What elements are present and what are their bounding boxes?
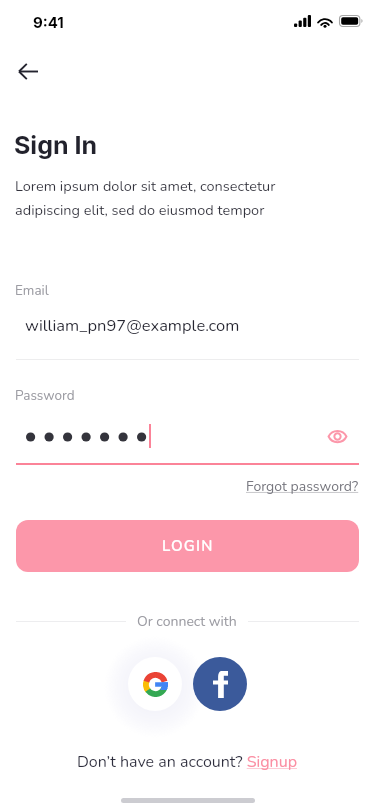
staticText: Or connect with: [137, 612, 237, 631]
staticText: Forgot password?: [246, 477, 359, 496]
button[interactable]: Sign in with Google: [128, 657, 182, 711]
button[interactable]: LOGIN: [16, 520, 359, 572]
button[interactable]: Don’t have an account? Signup: [77, 751, 298, 773]
staticText: Password: [15, 386, 75, 404]
button[interactable]: Show password: [323, 422, 351, 450]
staticText: Sign In: [14, 130, 98, 160]
staticText: Email: [15, 281, 49, 299]
button[interactable]: Back: [6, 49, 50, 93]
staticText: LOGIN: [162, 536, 214, 556]
staticText: 9:41: [33, 13, 64, 31]
button[interactable]: Sign in with Facebook: [193, 657, 247, 711]
staticText: Lorem ipsum dolor sit amet, consectetur …: [15, 176, 276, 220]
button[interactable]: Forgot password?: [0, 477, 359, 496]
staticText: Don’t have an account? Signup: [77, 751, 298, 773]
staticText: william_pn97@example.com: [25, 314, 240, 337]
